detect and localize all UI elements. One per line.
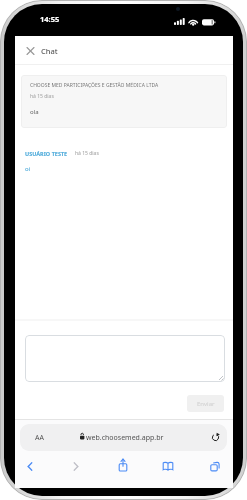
staticText: web.choosemed.app.br <box>86 433 164 443</box>
staticText: AA <box>35 433 44 443</box>
staticText: há 15 dias <box>75 150 99 157</box>
staticText: USUÁRIO TESTE <box>25 150 68 157</box>
staticText: Chat <box>41 46 58 56</box>
staticText: Enviar <box>197 400 215 408</box>
staticText: 14:55 <box>40 14 60 24</box>
staticText: ola <box>30 108 39 116</box>
staticText: há 15 dias <box>30 93 54 100</box>
staticText: oi <box>25 165 31 173</box>
staticText: CHOOSE MED PARTICIPAÇÕES E GESTÃO MÉDICA… <box>30 82 159 89</box>
